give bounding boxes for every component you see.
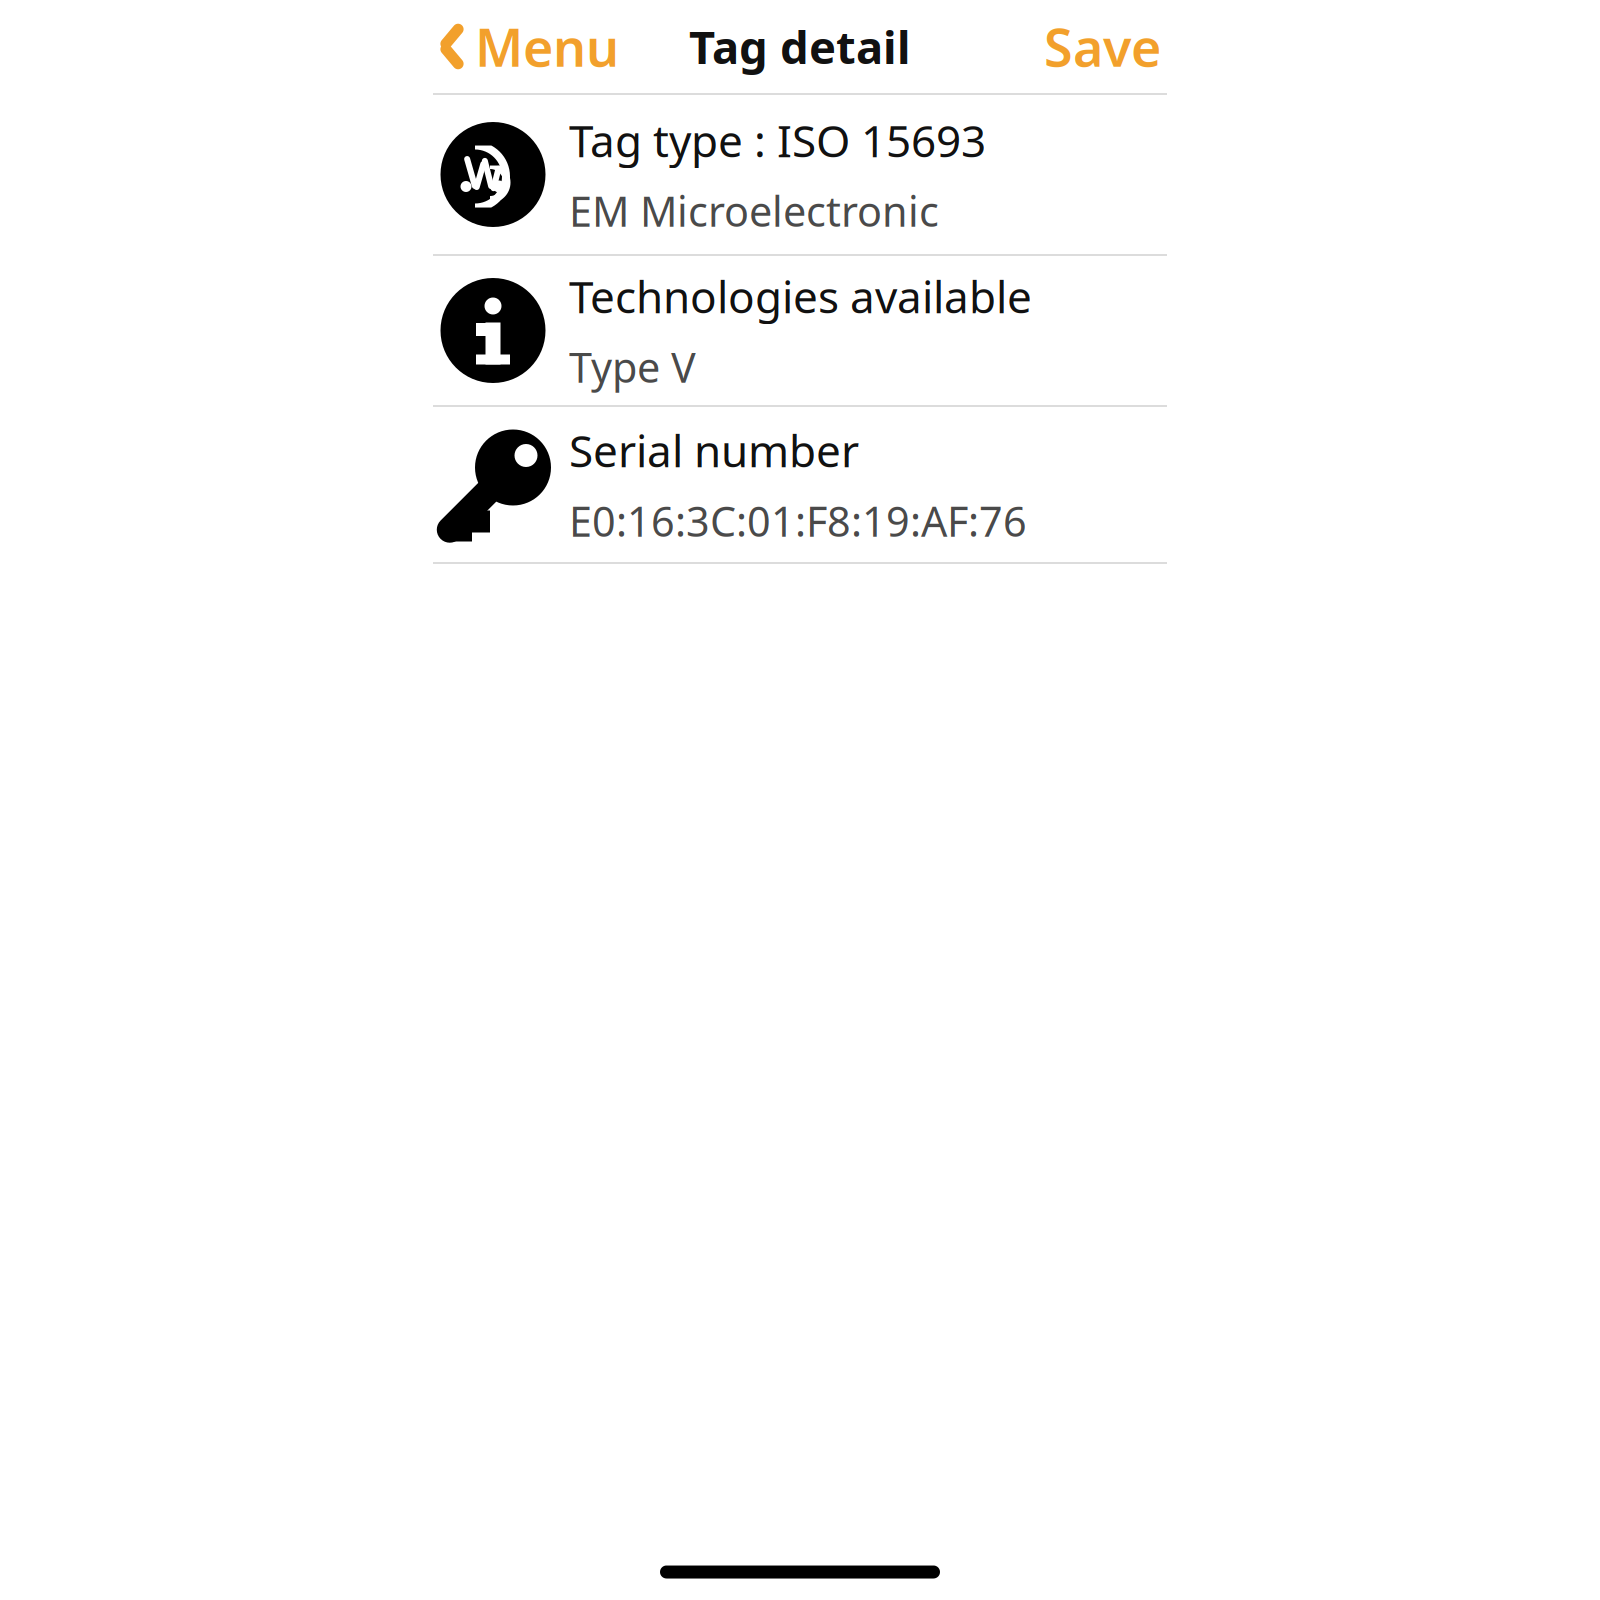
staticText: Menu bbox=[475, 12, 619, 81]
staticText: Type V bbox=[569, 339, 696, 394]
staticText: Tag type : ISO 15693 bbox=[569, 111, 986, 169]
staticText: Serial number bbox=[569, 421, 859, 479]
staticText: EM Microelectronic bbox=[569, 183, 939, 238]
staticText: Save bbox=[1044, 12, 1161, 81]
staticText: Tag detail bbox=[689, 16, 911, 77]
button[interactable]: Menu bbox=[433, 4, 625, 89]
staticText: Technologies available bbox=[569, 267, 1032, 325]
button[interactable]: Save bbox=[1038, 4, 1167, 89]
button[interactable]: Technologies available bbox=[433, 256, 1167, 405]
button[interactable]: Serial number bbox=[433, 407, 1167, 562]
button[interactable]: Tag type : ISO 15693 bbox=[433, 95, 1167, 254]
staticText: E0:16:3C:01:F8:19:AF:76 bbox=[569, 493, 1027, 548]
